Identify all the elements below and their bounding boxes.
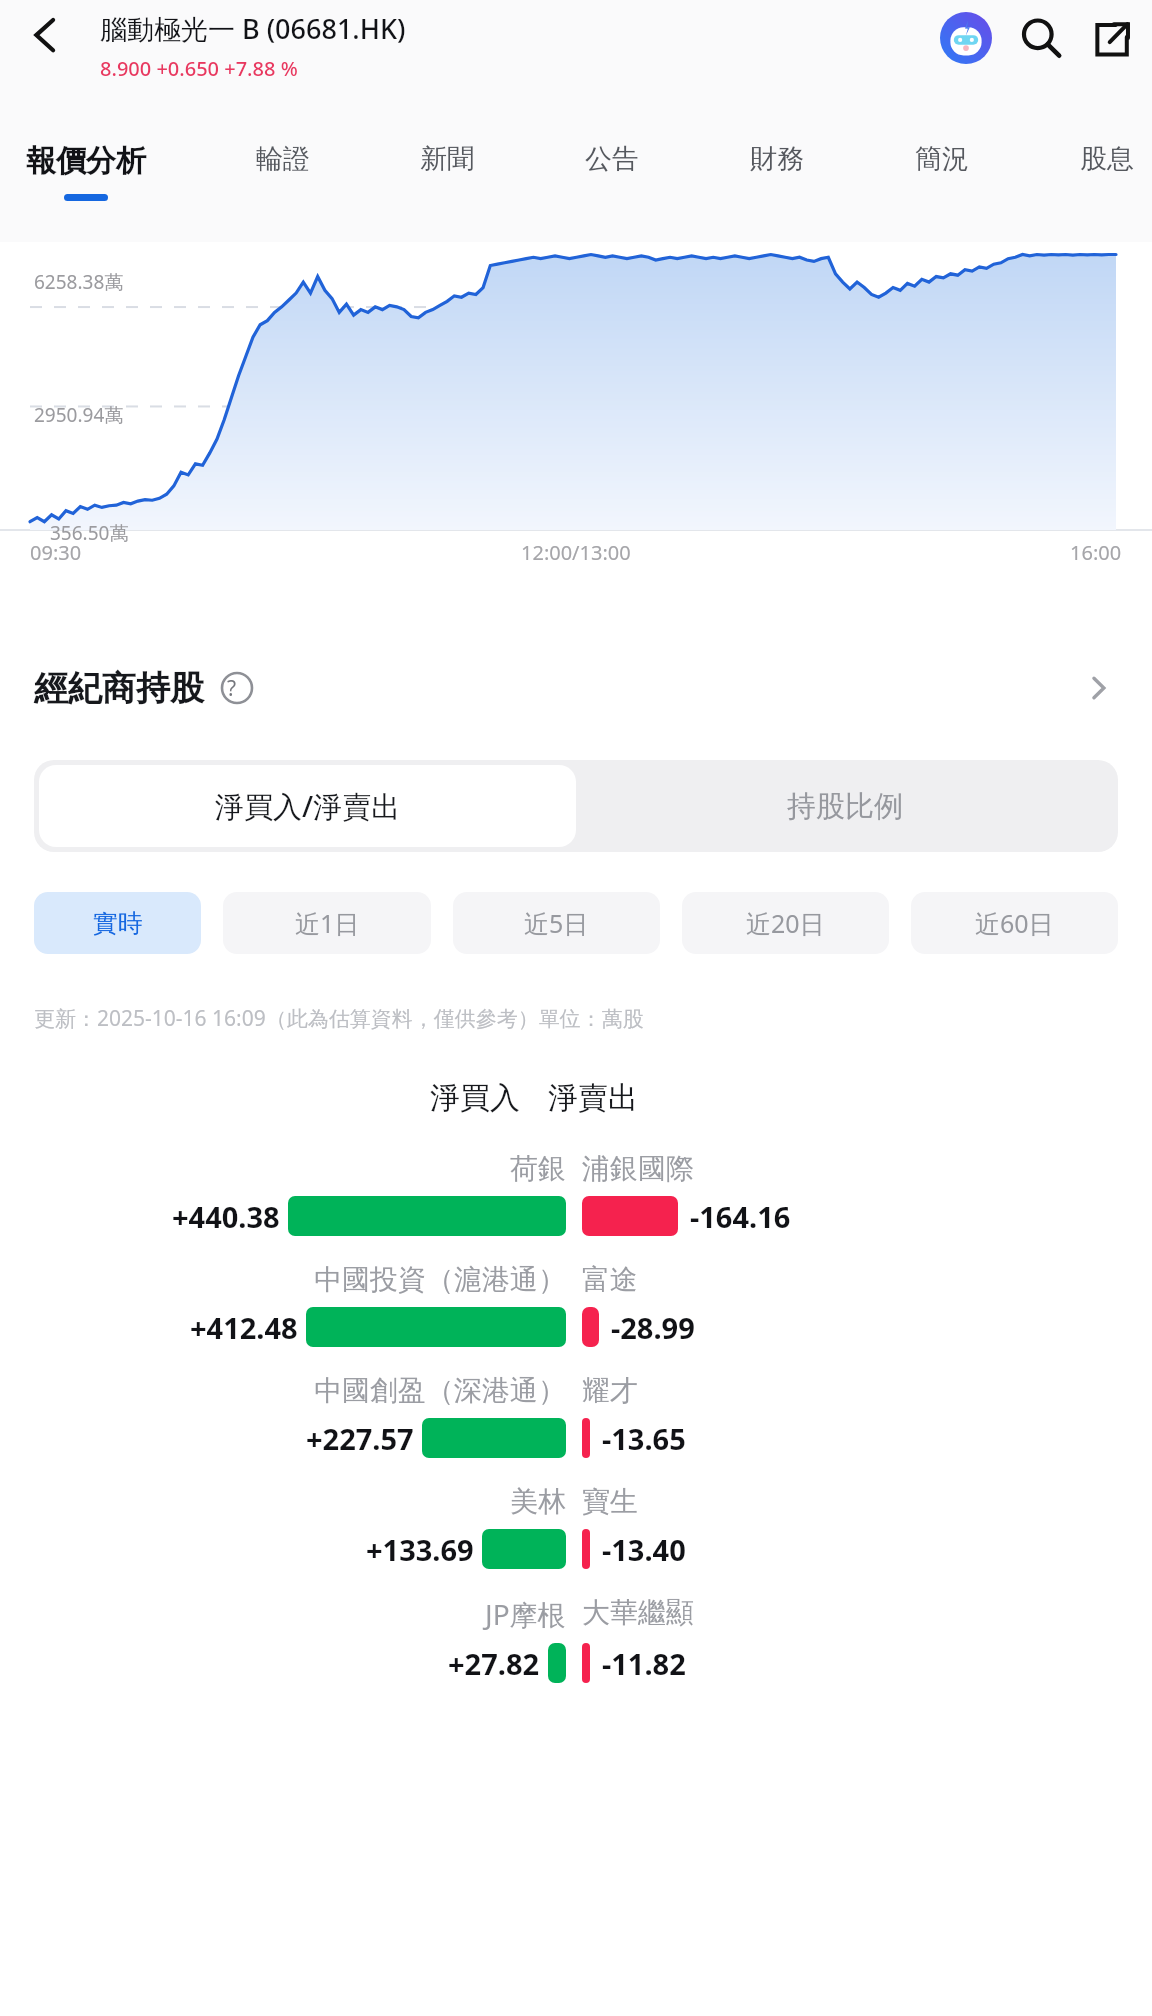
button[interactable]: Search (1018, 15, 1064, 61)
staticText: 經紀商持股 (34, 667, 204, 710)
staticText: 更新：2025-10-16 16:09（此為估算資料，僅供參考）單位：萬股 (34, 1004, 644, 1033)
staticText: 近60日 (975, 906, 1054, 940)
staticText: +412.48 (190, 1308, 298, 1347)
button[interactable]: Share (1090, 15, 1136, 61)
staticText: -11.82 (602, 1644, 686, 1683)
button[interactable]: 簡況 (915, 120, 969, 197)
staticText: 淨買入 (430, 1079, 520, 1117)
staticText: 輪證 (256, 142, 310, 176)
staticText: 富途 (582, 1262, 638, 1297)
staticText: JP摩根 (485, 1595, 566, 1633)
staticText: 6258.38萬 (34, 269, 124, 295)
staticText: 大華繼顯 (582, 1595, 694, 1630)
button[interactable]: 淨買入/淨賣出 (39, 765, 576, 847)
staticText: +227.57 (306, 1419, 414, 1458)
button[interactable]: 荷銀 (0, 1151, 1152, 1236)
button[interactable]: 近20日 (682, 892, 889, 954)
button[interactable]: 輪證 (256, 120, 310, 197)
button[interactable]: 經紀商持股 (0, 650, 1152, 726)
staticText: 2950.94萬 (34, 402, 124, 428)
button[interactable]: 實時 (34, 892, 201, 954)
button[interactable]: JP摩根 (0, 1595, 1152, 1683)
staticText: 12:00/13:00 (521, 539, 631, 566)
staticText: 持股比例 (787, 788, 903, 825)
staticText: 股息 (1080, 142, 1134, 176)
button[interactable]: 美林 (0, 1484, 1152, 1569)
button[interactable]: 近1日 (223, 892, 431, 954)
staticText: 近20日 (746, 906, 825, 940)
staticText: 浦銀國際 (582, 1151, 694, 1186)
staticText: -28.99 (611, 1308, 695, 1347)
staticText: 美林 (510, 1484, 566, 1519)
staticText: 耀才 (582, 1373, 638, 1408)
button[interactable]: 新聞 (420, 120, 474, 197)
staticText: +133.69 (366, 1530, 474, 1569)
button[interactable]: AI assistant (940, 12, 992, 64)
staticText: 淨買入/淨賣出 (215, 786, 401, 826)
staticText: 腦動極光一 B (06681.HK) (100, 10, 406, 47)
staticText: -13.65 (602, 1419, 686, 1458)
staticText: -13.40 (602, 1530, 686, 1569)
button[interactable]: 財務 (750, 120, 804, 197)
staticText: 近5日 (524, 906, 589, 940)
staticText: +440.38 (172, 1197, 280, 1236)
staticText: 淨賣出 (548, 1079, 638, 1117)
staticText: 簡況 (915, 142, 969, 176)
staticText: 報價分析 (26, 142, 146, 180)
button[interactable]: Back (14, 6, 70, 62)
staticText: 近1日 (295, 906, 360, 940)
staticText: 356.50萬 (50, 520, 129, 546)
button[interactable]: 中國投資（滬港通） (0, 1262, 1152, 1347)
button[interactable]: 公告 (585, 120, 639, 197)
button[interactable]: 報價分析 (26, 120, 146, 201)
staticText: 8.900 +0.650 +7.88 % (100, 55, 298, 82)
staticText: 荷銀 (510, 1151, 566, 1186)
staticText: 財務 (750, 142, 804, 176)
staticText: 16:00 (1070, 539, 1122, 566)
staticText: 寶生 (582, 1484, 638, 1519)
staticText: ? (227, 674, 237, 703)
button[interactable]: 持股比例 (576, 765, 1113, 847)
button[interactable]: 中國創盈（深港通） (0, 1373, 1152, 1458)
button[interactable]: 近60日 (911, 892, 1118, 954)
staticText: -164.16 (690, 1197, 791, 1236)
staticText: 09:30 (30, 539, 82, 566)
button[interactable]: 近5日 (453, 892, 660, 954)
staticText: 公告 (585, 142, 639, 176)
staticText: 中國創盈（深港通） (314, 1373, 566, 1408)
staticText: +27.82 (448, 1644, 540, 1683)
staticText: 新聞 (420, 142, 474, 176)
button[interactable]: 股息 (1080, 120, 1134, 197)
staticText: 中國投資（滬港通） (314, 1262, 566, 1297)
staticText: 實時 (93, 908, 143, 939)
